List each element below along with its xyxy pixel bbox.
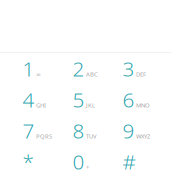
staticText: 8 — [72, 116, 84, 144]
button[interactable]: 0 — [61, 146, 111, 172]
staticText: PQRS — [36, 132, 52, 140]
staticText: # — [122, 147, 135, 172]
staticText: 7 — [22, 116, 34, 144]
staticText: 1 — [22, 54, 34, 82]
staticText: 9 — [122, 116, 134, 144]
button[interactable]: 7 — [11, 115, 61, 146]
button[interactable]: 4 — [11, 84, 61, 115]
button[interactable]: 6 — [111, 84, 161, 115]
button[interactable]: 9 — [111, 115, 161, 146]
staticText: DEF — [136, 70, 146, 78]
button[interactable]: 3 — [111, 53, 161, 84]
staticText: 4 — [22, 85, 34, 113]
button[interactable]: 5 — [61, 84, 111, 115]
staticText: WXYZ — [136, 132, 150, 140]
button[interactable]: 2 — [61, 53, 111, 84]
staticText: JKL — [86, 101, 95, 109]
staticText: 5 — [72, 85, 84, 113]
button[interactable]: * — [11, 146, 61, 172]
button[interactable]: # — [111, 146, 161, 172]
staticText: + — [86, 163, 89, 171]
button[interactable]: 1 — [11, 53, 61, 84]
staticText: ABC — [86, 70, 98, 78]
button[interactable]: 8 — [61, 115, 111, 146]
staticText: 2 — [72, 54, 84, 82]
staticText: TUV — [86, 132, 97, 140]
staticText: GHI — [36, 101, 46, 109]
staticText: 0 — [72, 147, 84, 172]
staticText: MNO — [136, 101, 150, 109]
staticText: 6 — [122, 85, 134, 113]
staticText: * — [22, 147, 33, 172]
staticText: ∞ — [36, 71, 41, 78]
staticText: 3 — [122, 54, 134, 82]
